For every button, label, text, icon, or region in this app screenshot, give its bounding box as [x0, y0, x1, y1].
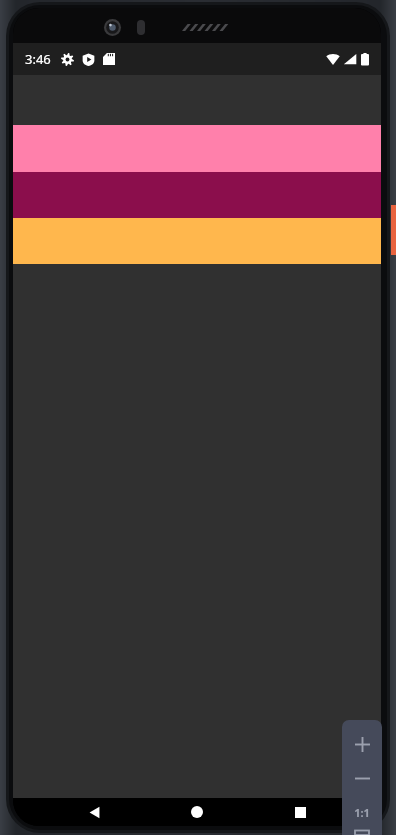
button[interactable]: Zoom in: [345, 727, 379, 761]
button[interactable]: Zoom out: [345, 761, 379, 795]
button[interactable]: Fit to window: [345, 829, 379, 835]
staticText: 1:1: [354, 805, 370, 820]
staticText: 3:46: [25, 50, 51, 68]
button[interactable]: Recent apps: [278, 798, 322, 826]
button[interactable]: Actual size: [345, 795, 379, 829]
button[interactable]: Home: [175, 798, 219, 826]
button[interactable]: Back: [72, 798, 116, 826]
